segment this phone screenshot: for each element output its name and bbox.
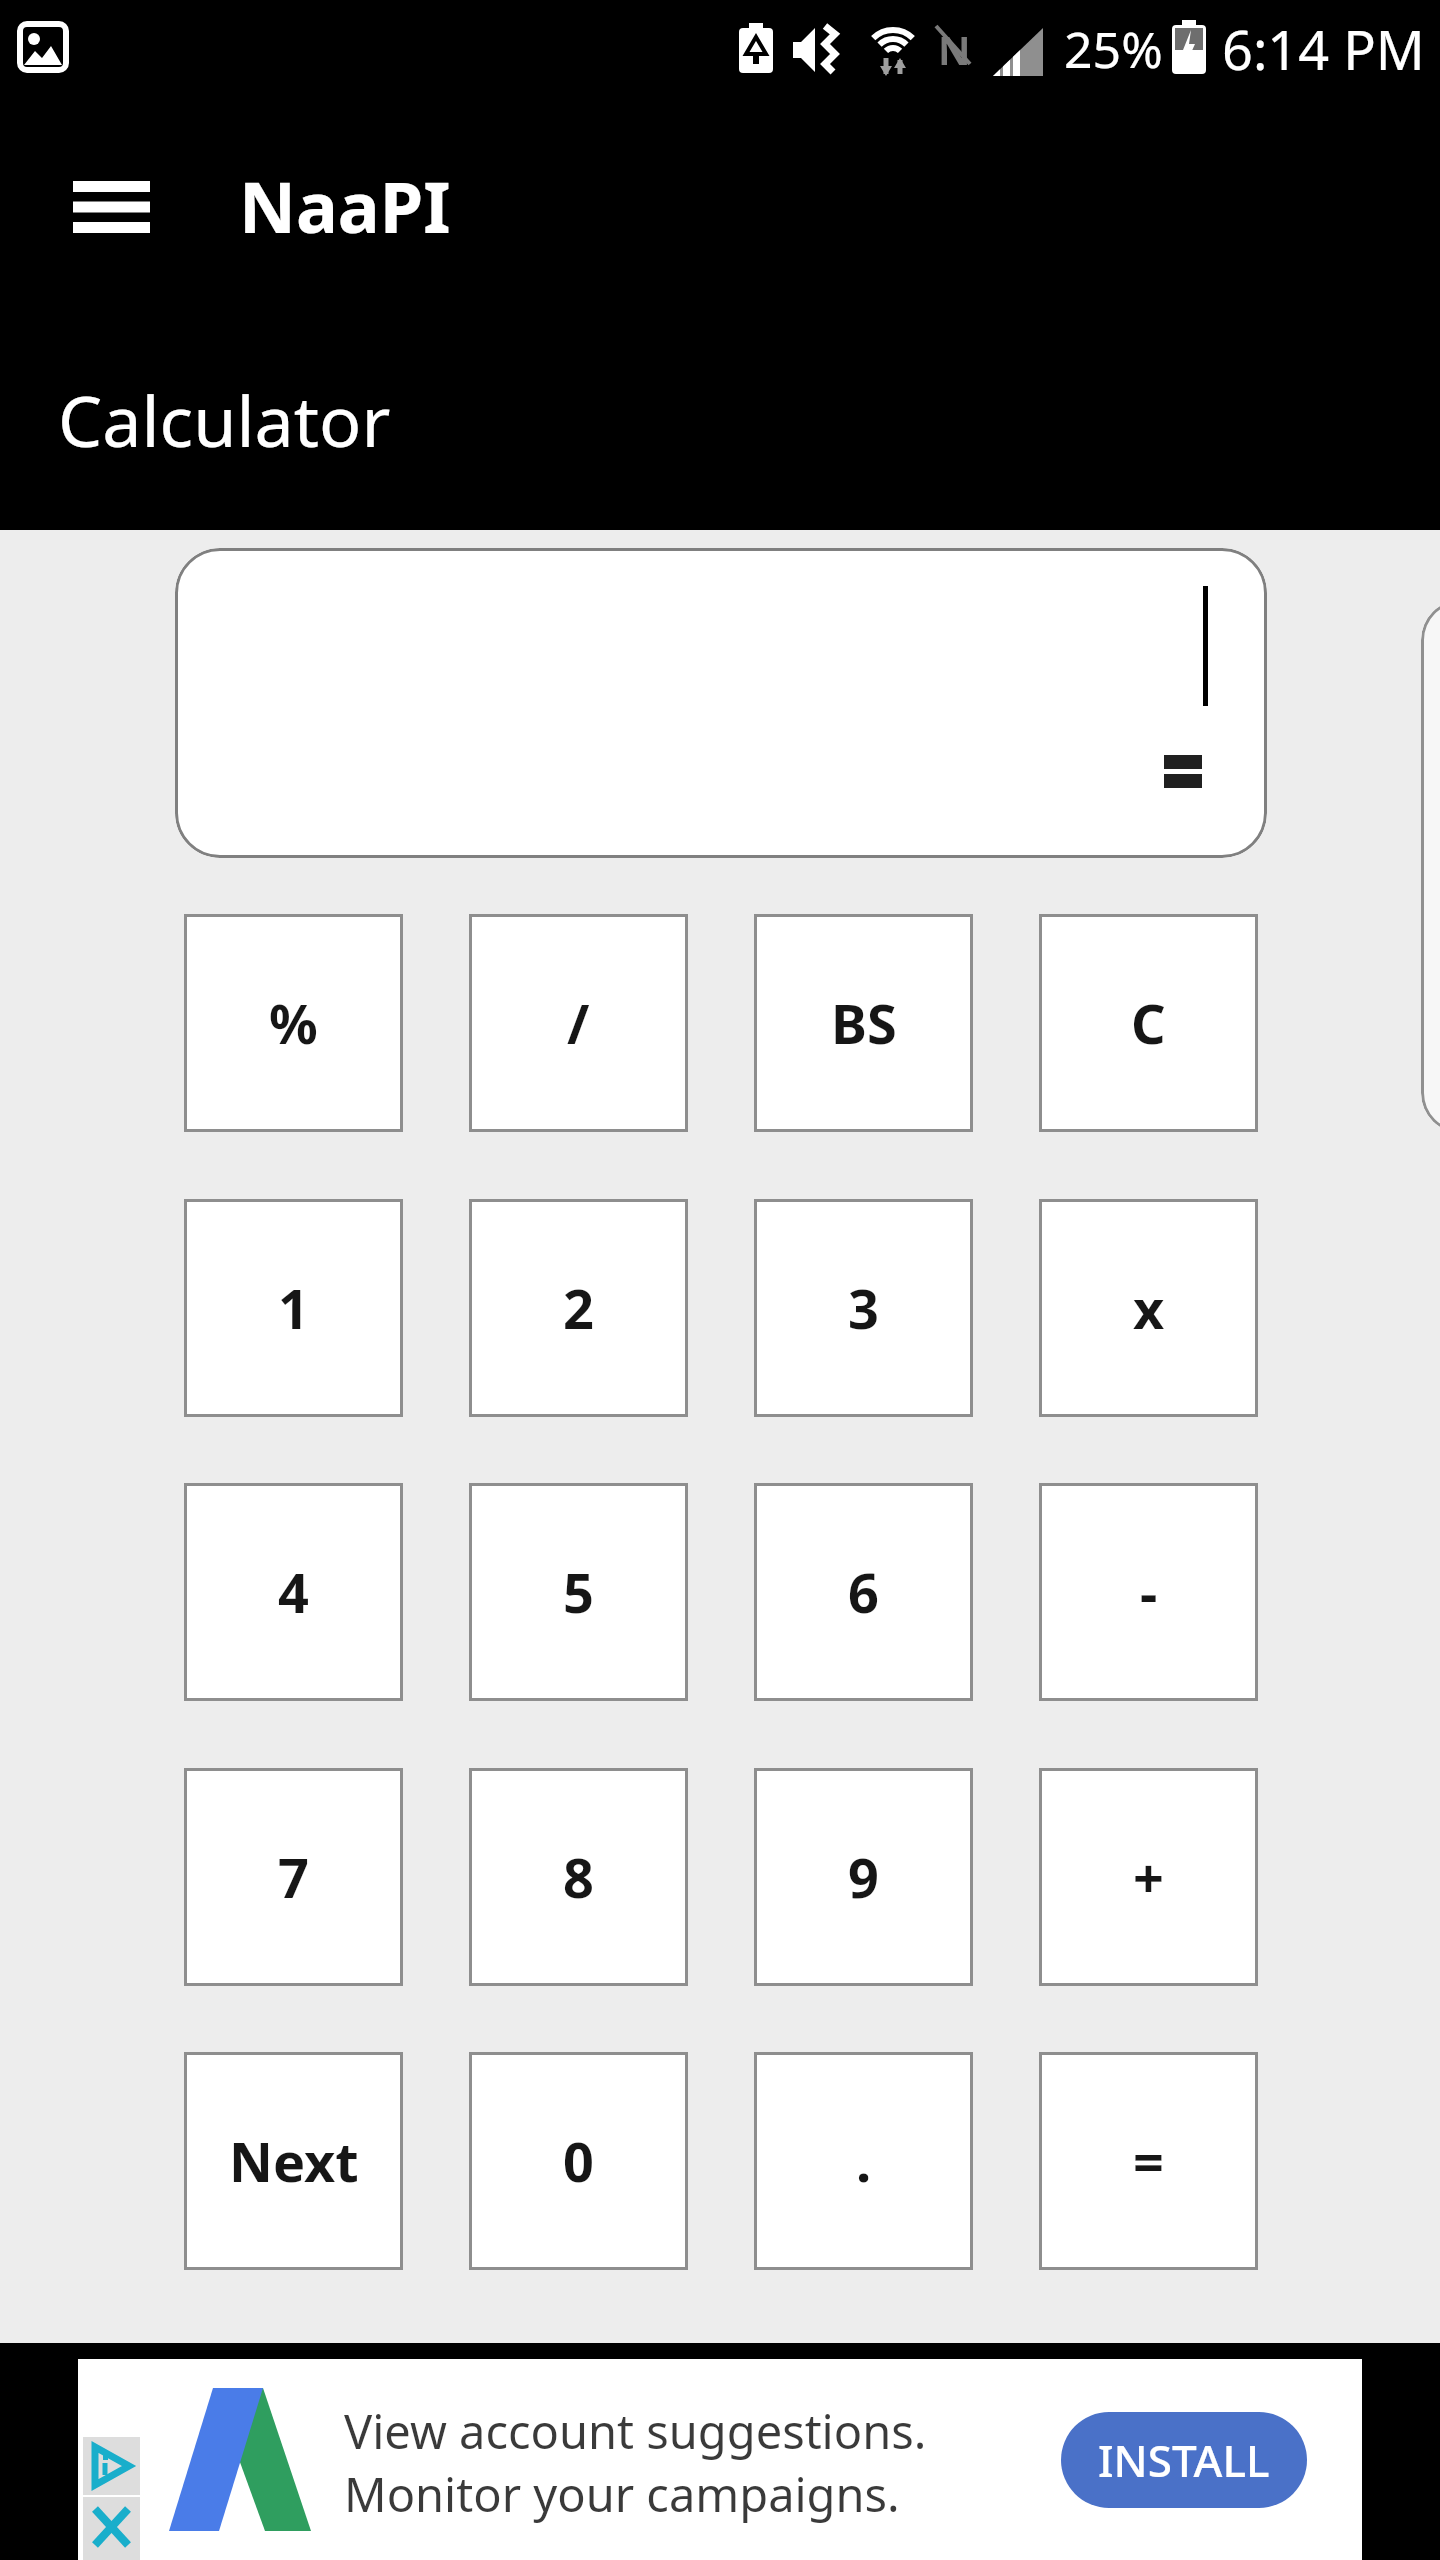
button[interactable]: 7 bbox=[184, 1768, 403, 1986]
button[interactable]: . bbox=[754, 2052, 973, 2270]
button[interactable]: INSTALL bbox=[1061, 2412, 1307, 2508]
button[interactable]: Next bbox=[184, 2052, 403, 2270]
button[interactable] bbox=[78, 2359, 1362, 2560]
button[interactable]: C bbox=[1039, 914, 1258, 1132]
staticText: 0 bbox=[563, 2124, 594, 2198]
button[interactable]: x bbox=[1039, 1199, 1258, 1417]
button[interactable]: 8 bbox=[469, 1768, 688, 1986]
staticText: = bbox=[1133, 2124, 1164, 2198]
staticText: BS bbox=[831, 986, 897, 1060]
staticText: 2 bbox=[563, 1271, 594, 1345]
button[interactable]: 9 bbox=[754, 1768, 973, 1986]
staticText: 1 bbox=[278, 1271, 309, 1345]
staticText: 25% bbox=[1064, 15, 1163, 83]
staticText: Calculator bbox=[58, 372, 391, 467]
staticText: 9 bbox=[848, 1840, 879, 1914]
button[interactable] bbox=[175, 548, 1267, 858]
staticText: 5 bbox=[563, 1555, 594, 1629]
button[interactable]: BS bbox=[754, 914, 973, 1132]
button[interactable]: - bbox=[1039, 1483, 1258, 1701]
staticText: 6:14 PM bbox=[1222, 12, 1425, 86]
staticText: 7 bbox=[278, 1840, 309, 1914]
button[interactable]: = bbox=[1039, 2052, 1258, 2270]
button[interactable]: / bbox=[469, 914, 688, 1132]
button[interactable] bbox=[73, 181, 150, 233]
button[interactable]: 5 bbox=[469, 1483, 688, 1701]
button[interactable]: 0 bbox=[469, 2052, 688, 2270]
staticText: 4 bbox=[278, 1555, 309, 1629]
staticText: 6 bbox=[848, 1555, 879, 1629]
staticText: 8 bbox=[563, 1840, 594, 1914]
staticText: x bbox=[1133, 1271, 1165, 1345]
staticText: Next bbox=[229, 2124, 359, 2198]
staticText: - bbox=[1140, 1555, 1158, 1629]
staticText: N bbox=[938, 22, 971, 76]
staticText: / bbox=[567, 986, 590, 1060]
staticText: C bbox=[1131, 986, 1166, 1060]
button[interactable]: % bbox=[184, 914, 403, 1132]
button[interactable]: + bbox=[1039, 1768, 1258, 1986]
staticText: . bbox=[856, 2124, 872, 2198]
staticText: View account suggestions. bbox=[344, 2399, 927, 2463]
staticText: Monitor your campaigns. bbox=[344, 2462, 900, 2526]
staticText: + bbox=[1133, 1840, 1164, 1914]
button[interactable]: 1 bbox=[184, 1199, 403, 1417]
button[interactable]: 3 bbox=[754, 1199, 973, 1417]
staticText: NaaPI bbox=[239, 158, 451, 253]
button[interactable]: 2 bbox=[469, 1199, 688, 1417]
button[interactable]: 6 bbox=[754, 1483, 973, 1701]
button[interactable]: 4 bbox=[184, 1483, 403, 1701]
staticText: % bbox=[269, 986, 318, 1060]
staticText: 3 bbox=[848, 1271, 879, 1345]
staticText: INSTALL bbox=[1098, 2430, 1270, 2490]
